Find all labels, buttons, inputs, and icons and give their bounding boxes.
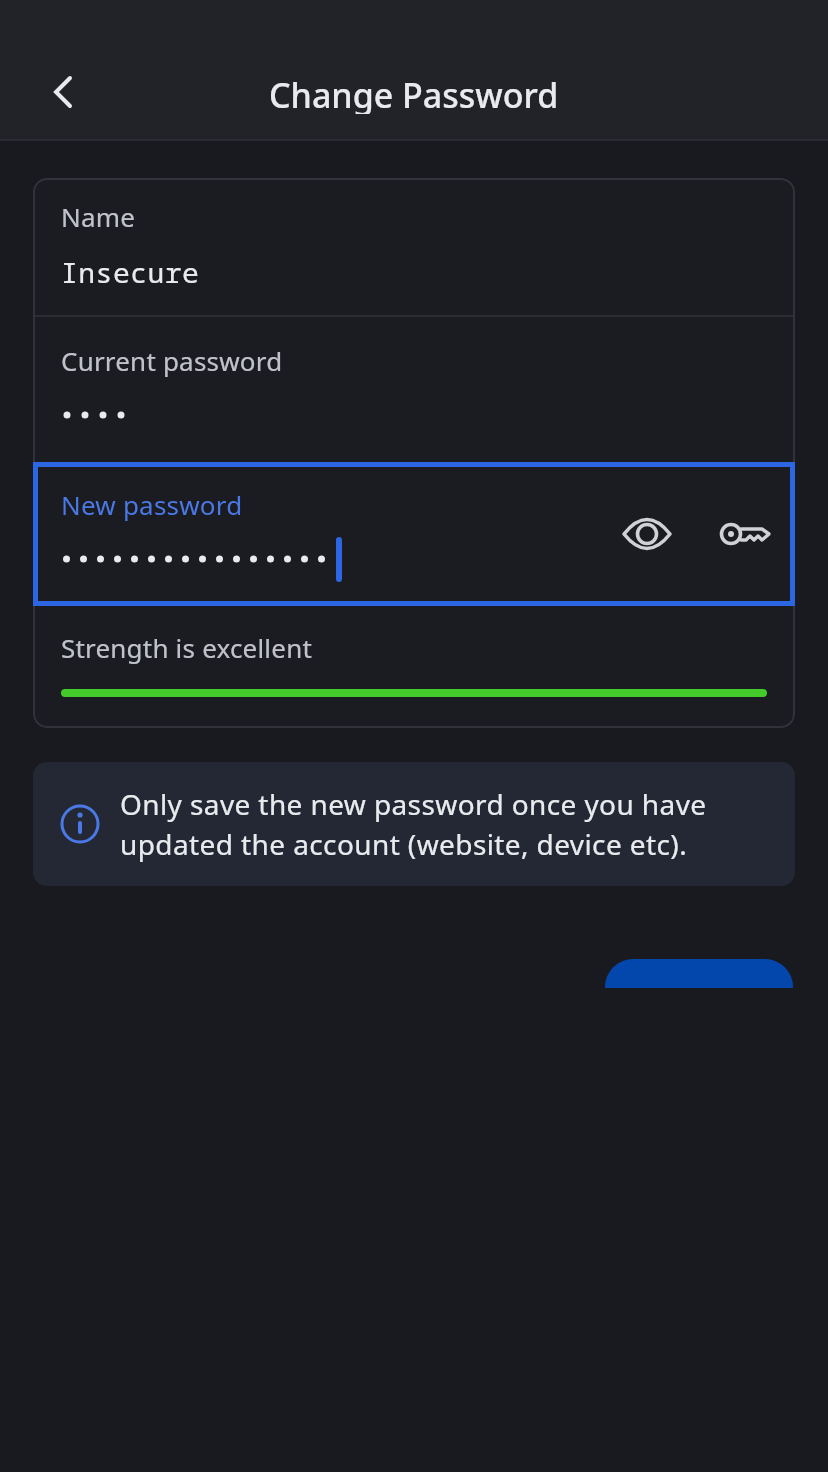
button[interactable]: [33, 316, 795, 462]
button[interactable]: [39, 68, 87, 116]
staticText: updated the account (website, device etc…: [120, 825, 688, 863]
button[interactable]: [605, 959, 793, 988]
staticText: Insecure: [61, 253, 200, 291]
staticText: New password: [61, 487, 243, 522]
button[interactable]: [619, 506, 675, 562]
staticText: Current password: [61, 343, 283, 378]
button[interactable]: [33, 178, 795, 316]
button[interactable]: Only save the new password once you have: [33, 762, 795, 886]
button[interactable]: [717, 506, 773, 562]
staticText: Strength is excellent: [61, 630, 312, 665]
staticText: Only save the new password once you have: [120, 785, 707, 823]
staticText: Name: [61, 199, 136, 234]
button[interactable]: New password: [33, 462, 795, 606]
staticText: Change Password: [269, 72, 559, 114]
